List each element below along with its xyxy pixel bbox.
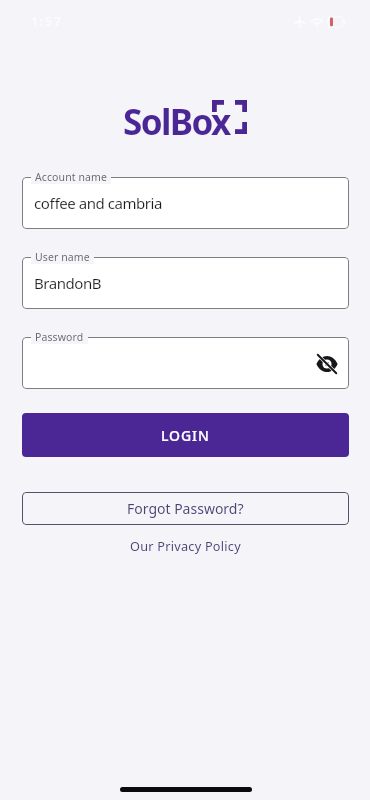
staticText: Account name (35, 170, 107, 184)
button[interactable]: Our Privacy Policy (122, 533, 249, 558)
staticText: Our Privacy Policy (130, 537, 241, 554)
button[interactable] (22, 177, 349, 229)
button[interactable]: LOGIN (22, 413, 349, 457)
button[interactable] (22, 337, 349, 389)
button[interactable]: Show password (308, 345, 346, 383)
staticText: BrandonB (34, 273, 102, 293)
staticText: Forgot Password? (127, 499, 244, 518)
staticText: User name (35, 250, 90, 264)
button[interactable] (22, 257, 349, 309)
button[interactable]: Forgot Password? (22, 492, 349, 525)
staticText: LOGIN (161, 426, 210, 445)
staticText: SolBox (123, 98, 230, 146)
staticText: coffee and cambria (34, 193, 162, 213)
staticText: Password (35, 330, 84, 344)
